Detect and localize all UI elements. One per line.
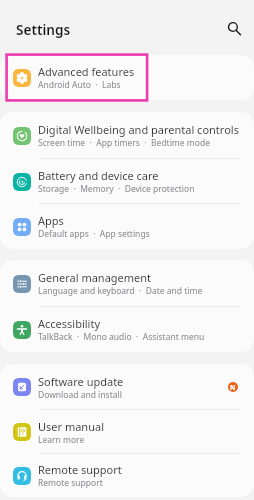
button[interactable]: Accessibility (0, 307, 254, 352)
staticText: TalkBack · Mono audio · Assistant menu (38, 331, 205, 343)
staticText: Android Auto · Labs (38, 79, 121, 91)
staticText: Remote support (38, 462, 122, 477)
staticText: Digital Wellbeing and parental controls (38, 122, 239, 137)
staticText: General management (38, 270, 152, 285)
button[interactable]: User manual (0, 410, 254, 454)
button[interactable]: Apps (0, 204, 254, 249)
button[interactable]: Battery and device care (0, 159, 254, 204)
staticText: Software update (38, 374, 124, 389)
staticText: Settings (16, 20, 71, 39)
staticText: N (230, 383, 236, 392)
staticText: Learn more (38, 434, 85, 446)
button[interactable]: General management (0, 260, 254, 307)
staticText: Advanced features (38, 64, 135, 79)
staticText: Apps (38, 213, 64, 228)
staticText: Accessibility (38, 316, 101, 331)
staticText: Default apps · App settings (38, 228, 150, 240)
staticText: Language and keyboard · Date and time (38, 285, 203, 297)
button[interactable]: Search (217, 11, 249, 43)
button[interactable]: Advanced features (0, 55, 254, 100)
staticText: Storage · Memory · Device protection (38, 183, 195, 195)
button[interactable]: Digital Wellbeing and parental controls (0, 112, 254, 159)
staticText: Screen time · App timers · Bedtime mode (38, 137, 210, 149)
button[interactable]: Software update (0, 364, 254, 410)
staticText: Battery and device care (38, 168, 159, 183)
staticText: User manual (38, 419, 104, 434)
button[interactable]: Remote support (0, 454, 254, 497)
staticText: Remote support (38, 477, 103, 489)
staticText: Download and install (38, 389, 122, 401)
